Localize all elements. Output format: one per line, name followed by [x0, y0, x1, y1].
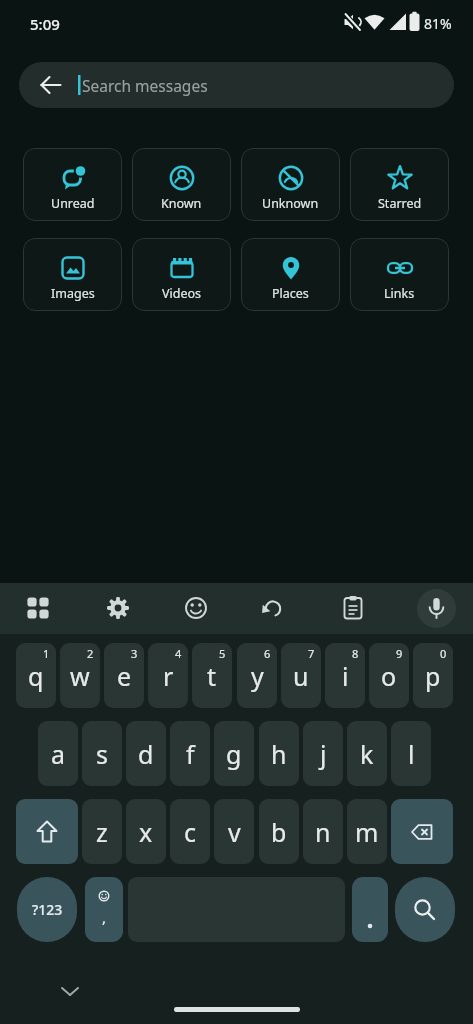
staticText: a	[51, 737, 66, 771]
button[interactable]: h	[259, 721, 299, 786]
button[interactable]: Videos	[132, 238, 231, 311]
staticText: 1	[43, 646, 50, 661]
button[interactable]: u	[281, 643, 321, 708]
button[interactable]	[417, 589, 456, 628]
staticText: 9	[396, 646, 403, 661]
button[interactable]: d	[126, 721, 166, 786]
button[interactable]: t	[192, 643, 232, 708]
button[interactable]	[391, 799, 453, 864]
button[interactable]: Unread	[23, 148, 122, 221]
button[interactable]: j	[303, 721, 343, 786]
button[interactable]: o	[369, 643, 409, 708]
button[interactable]: Images	[23, 238, 122, 311]
button[interactable]: p	[413, 643, 453, 708]
button[interactable]: r	[148, 643, 188, 708]
staticText: x	[139, 815, 153, 849]
button[interactable]	[395, 877, 455, 942]
staticText: n	[315, 815, 331, 849]
staticText: d	[138, 737, 154, 771]
staticText: c	[184, 815, 197, 849]
button[interactable]: i	[325, 643, 365, 708]
button[interactable]: Search messages	[19, 62, 454, 108]
button[interactable]	[253, 588, 293, 628]
staticText: Search messages	[82, 75, 208, 96]
staticText: Unknown	[262, 195, 319, 212]
staticText: Places	[272, 285, 309, 302]
staticText: Links	[384, 285, 415, 302]
button[interactable]: l	[391, 721, 431, 786]
button[interactable]: Places	[241, 238, 340, 311]
staticText: Images	[51, 285, 95, 302]
button[interactable]: m	[347, 799, 387, 864]
staticText: b	[271, 815, 287, 849]
staticText: ,	[102, 907, 107, 927]
staticText: u	[293, 659, 309, 693]
button[interactable]: Known	[132, 148, 231, 221]
staticText: 0	[440, 646, 447, 661]
button[interactable]: Starred	[350, 148, 449, 221]
staticText: 5:09	[30, 14, 60, 34]
staticText: j	[320, 737, 327, 771]
button[interactable]	[98, 588, 138, 628]
staticText: h	[271, 737, 287, 771]
staticText: l	[408, 737, 415, 771]
button[interactable]: ,	[85, 877, 123, 942]
staticText: m	[355, 815, 379, 849]
staticText: 6	[264, 646, 271, 661]
button[interactable]: f	[170, 721, 210, 786]
staticText: z	[96, 815, 108, 849]
button[interactable]: Links	[350, 238, 449, 311]
staticText: 81%	[424, 14, 452, 33]
button[interactable]: q	[16, 643, 56, 708]
button[interactable]: z	[82, 799, 122, 864]
button[interactable]: a	[38, 721, 78, 786]
button[interactable]	[333, 588, 373, 628]
staticText: q	[28, 659, 44, 693]
staticText: 7	[308, 646, 315, 661]
staticText: Videos	[162, 285, 202, 302]
staticText: 8	[352, 646, 359, 661]
button[interactable]	[54, 982, 86, 1002]
staticText: ?123	[32, 900, 63, 919]
button[interactable]	[352, 877, 388, 942]
button[interactable]: ?123	[17, 877, 77, 942]
button[interactable]: x	[126, 799, 166, 864]
staticText: t	[207, 659, 217, 693]
staticText: 5	[219, 646, 226, 661]
button[interactable]: y	[237, 643, 277, 708]
staticText: 4	[175, 646, 182, 661]
staticText: 3	[131, 646, 138, 661]
staticText: s	[96, 737, 108, 771]
staticText: Starred	[378, 195, 422, 212]
button[interactable]: c	[170, 799, 210, 864]
staticText: v	[228, 815, 241, 849]
button[interactable]: s	[82, 721, 122, 786]
staticText: Unread	[51, 195, 95, 212]
staticText: f	[186, 737, 195, 771]
staticText: Known	[161, 195, 202, 212]
staticText: w	[70, 659, 90, 693]
staticText: r	[163, 659, 174, 693]
button[interactable]	[176, 588, 216, 628]
staticText: 2	[87, 646, 94, 661]
button[interactable]: b	[259, 799, 299, 864]
staticText: k	[360, 737, 374, 771]
staticText: y	[251, 659, 264, 693]
button[interactable]: e	[104, 643, 144, 708]
staticText: o	[381, 659, 397, 693]
button[interactable]: w	[60, 643, 100, 708]
button[interactable]: n	[303, 799, 343, 864]
staticText: e	[117, 659, 132, 693]
button[interactable]: v	[214, 799, 254, 864]
button[interactable]	[16, 799, 78, 864]
button[interactable]: g	[214, 721, 254, 786]
staticText: p	[425, 659, 441, 693]
staticText: i	[342, 659, 349, 693]
button[interactable]: Unknown	[241, 148, 340, 221]
button[interactable]	[18, 588, 58, 628]
button[interactable]: k	[347, 721, 387, 786]
staticText: g	[226, 737, 242, 771]
